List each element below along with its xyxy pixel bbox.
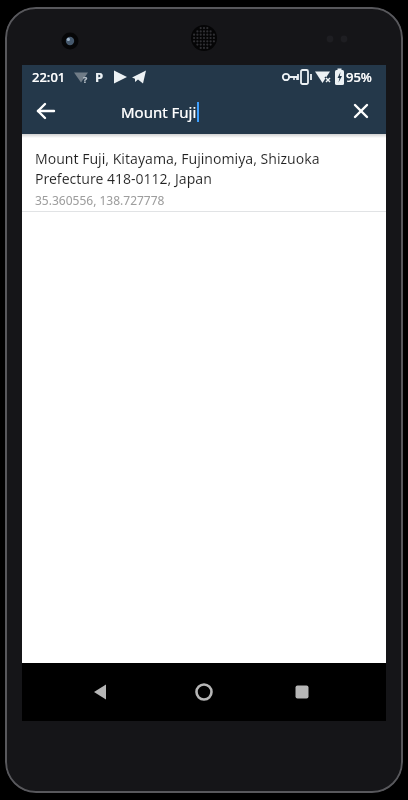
staticText: Mount Fuji, Kitayama, Fujinomiya, Shizuo… xyxy=(35,149,320,188)
button[interactable] xyxy=(278,668,326,716)
button[interactable] xyxy=(76,668,124,716)
staticText: P xyxy=(95,68,104,86)
button[interactable] xyxy=(30,95,62,127)
staticText: ? xyxy=(83,73,88,85)
staticText: Mount Fuji xyxy=(121,102,197,122)
button[interactable]: Mount Fuji, Kitayama, Fujinomiya, Shizuo… xyxy=(22,134,386,212)
button[interactable] xyxy=(180,668,228,716)
button[interactable]: Mount Fuji xyxy=(121,89,199,134)
staticText: 35.360556, 138.727778 xyxy=(35,192,165,208)
button[interactable] xyxy=(345,95,377,127)
staticText: 95% xyxy=(346,68,372,86)
staticText: 22:01 xyxy=(32,68,66,86)
